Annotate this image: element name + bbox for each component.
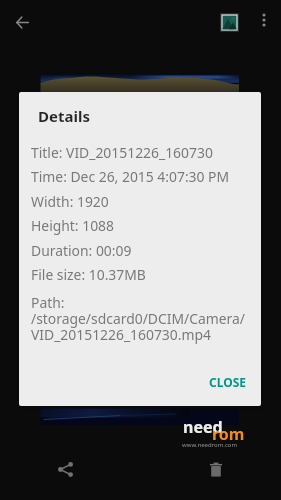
button[interactable]: Share: [43, 447, 88, 492]
button[interactable]: CLOSE: [199, 365, 255, 397]
staticText: VID_20151226_160730.mp4: [31, 325, 211, 344]
staticText: Width: 1920: [31, 192, 109, 211]
staticText: /storage/sdcard0/DCIM/Camera/: [31, 309, 246, 328]
button[interactable]: More options: [245, 1, 281, 39]
staticText: Duration: 00:09: [31, 241, 132, 260]
staticText: Height: 1088: [31, 216, 114, 235]
button[interactable]: Delete: [193, 447, 238, 492]
staticText: File size: 10.37MB: [31, 265, 146, 284]
staticText: Path:: [31, 293, 65, 312]
staticText: Title: VID_20151226_160730: [31, 143, 213, 162]
button[interactable]: Gallery: [207, 0, 251, 44]
staticText: rom: [212, 423, 245, 445]
staticText: www.needrom.com: [182, 441, 238, 449]
staticText: Details: [38, 106, 90, 126]
staticText: need: [183, 416, 223, 438]
staticText: Time: Dec 26, 2015 4:07:30 PM: [31, 167, 230, 186]
button[interactable]: Back: [0, 0, 44, 44]
staticText: CLOSE: [209, 374, 246, 390]
